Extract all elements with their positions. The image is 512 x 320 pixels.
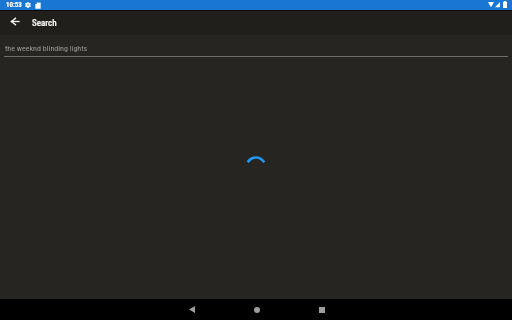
button[interactable]: Navigate up (3, 9, 27, 33)
button[interactable]: Recent apps (311, 299, 332, 320)
staticText: the weeknd blinding lights (5, 44, 88, 53)
staticText: Search (32, 18, 57, 29)
button[interactable]: Home (246, 299, 267, 320)
staticText: 10:53 (6, 1, 22, 9)
button[interactable]: Back (181, 299, 202, 320)
